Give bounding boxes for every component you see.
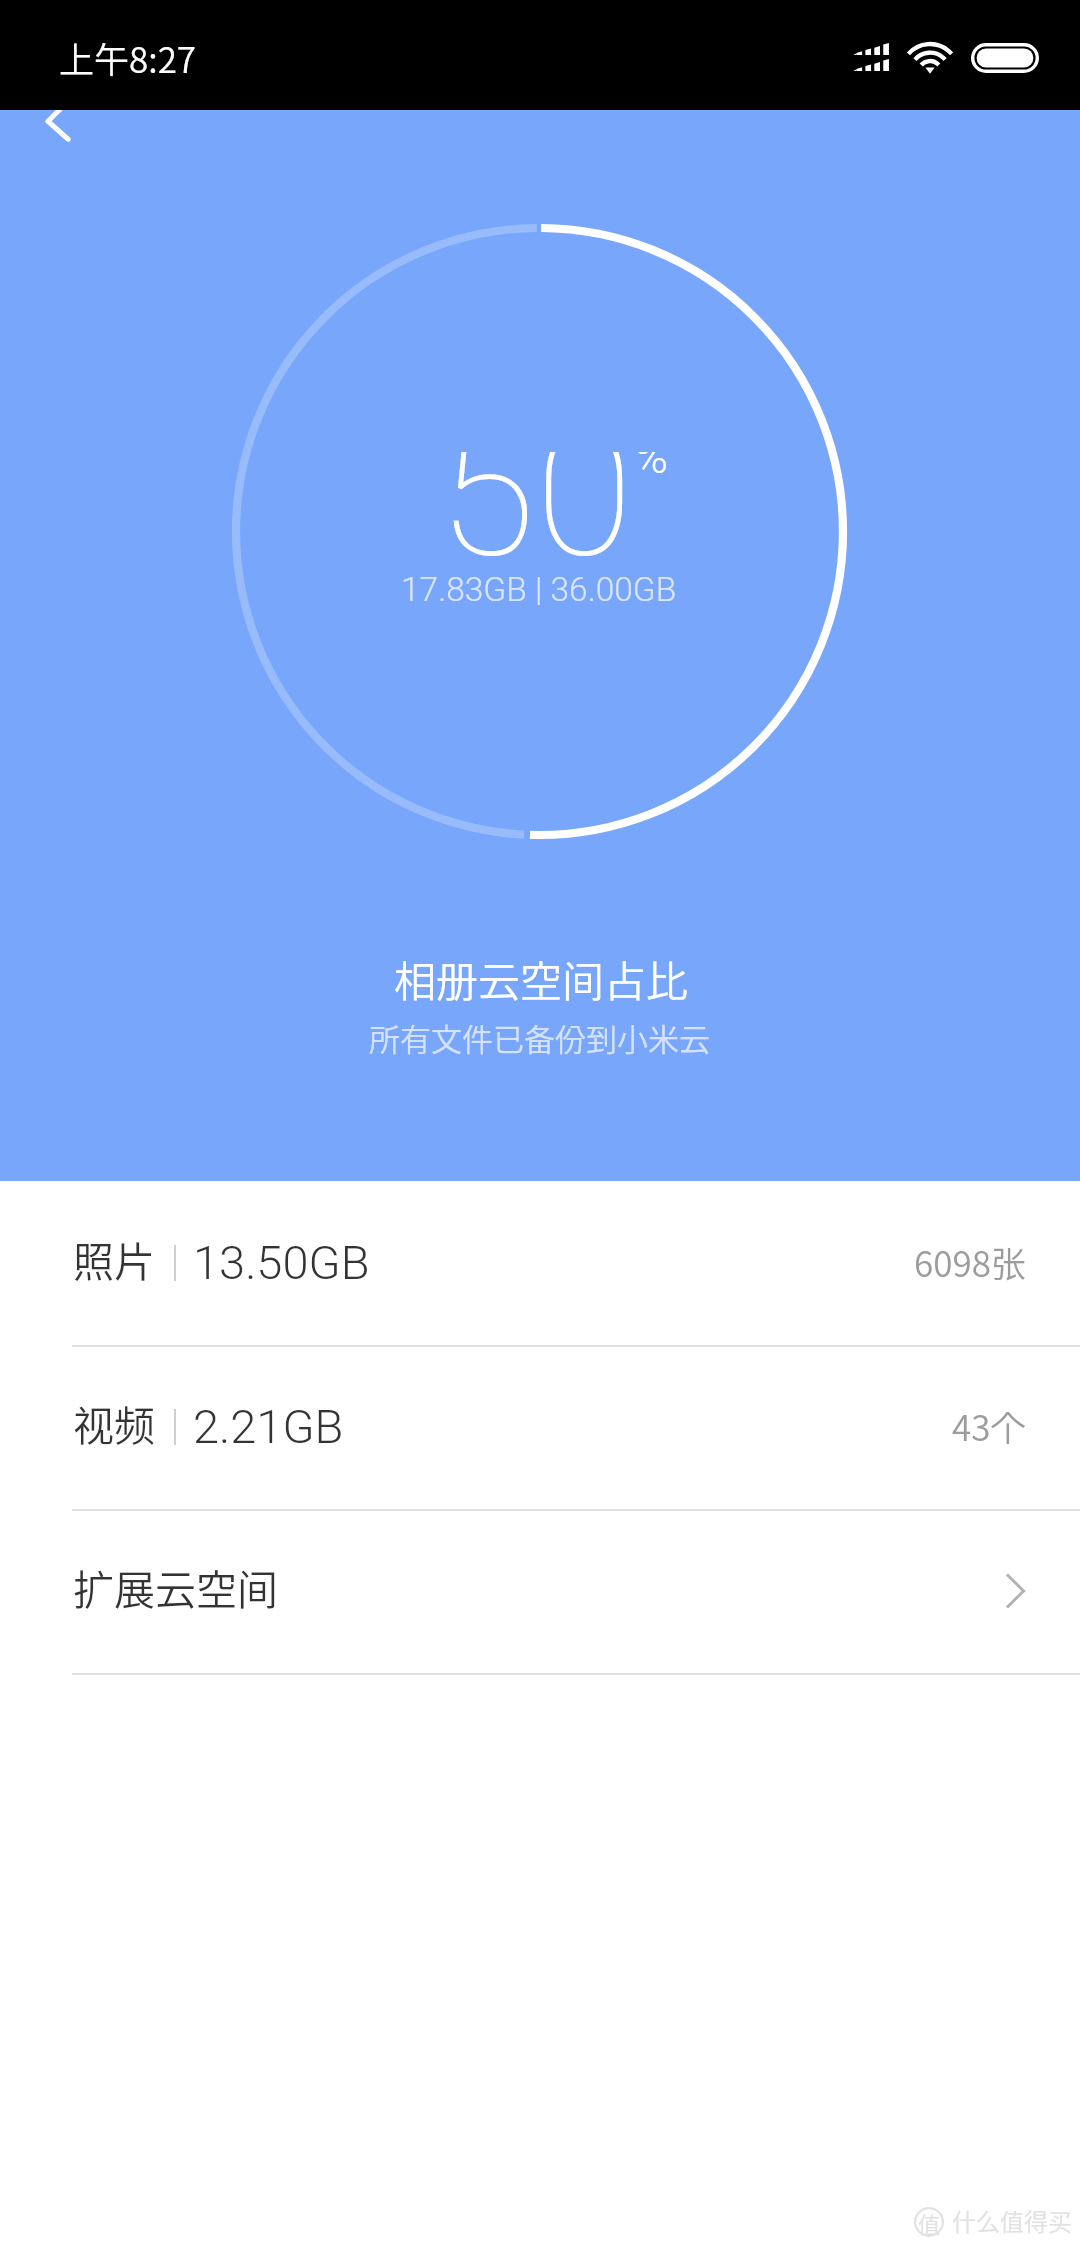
staticText: 什么值得买: [952, 2203, 1072, 2238]
staticText: 值: [918, 2207, 941, 2239]
staticText: 13.50GB: [193, 1235, 370, 1290]
staticText: 17.83GB | 36.00GB: [401, 570, 677, 609]
staticText: 2.21GB: [193, 1399, 344, 1454]
staticText: 所有文件已备份到小米云: [369, 1015, 710, 1060]
staticText: %: [634, 452, 669, 484]
staticText: 扩展云空间: [73, 1557, 278, 1616]
button[interactable]: 扩展云空间: [0, 1509, 1080, 1673]
staticText: 上午8:27: [59, 32, 197, 83]
staticText: 43个: [952, 1400, 1026, 1451]
button[interactable]: 照片: [0, 1181, 1080, 1345]
staticText: 照片: [73, 1229, 155, 1288]
button[interactable]: 视频: [0, 1345, 1080, 1509]
staticText: 50: [438, 452, 633, 558]
staticText: 视频: [73, 1393, 155, 1452]
staticText: 6098张: [914, 1236, 1026, 1287]
button[interactable]: Back: [12, 76, 108, 164]
staticText: 相册云空间占比: [394, 948, 689, 1009]
